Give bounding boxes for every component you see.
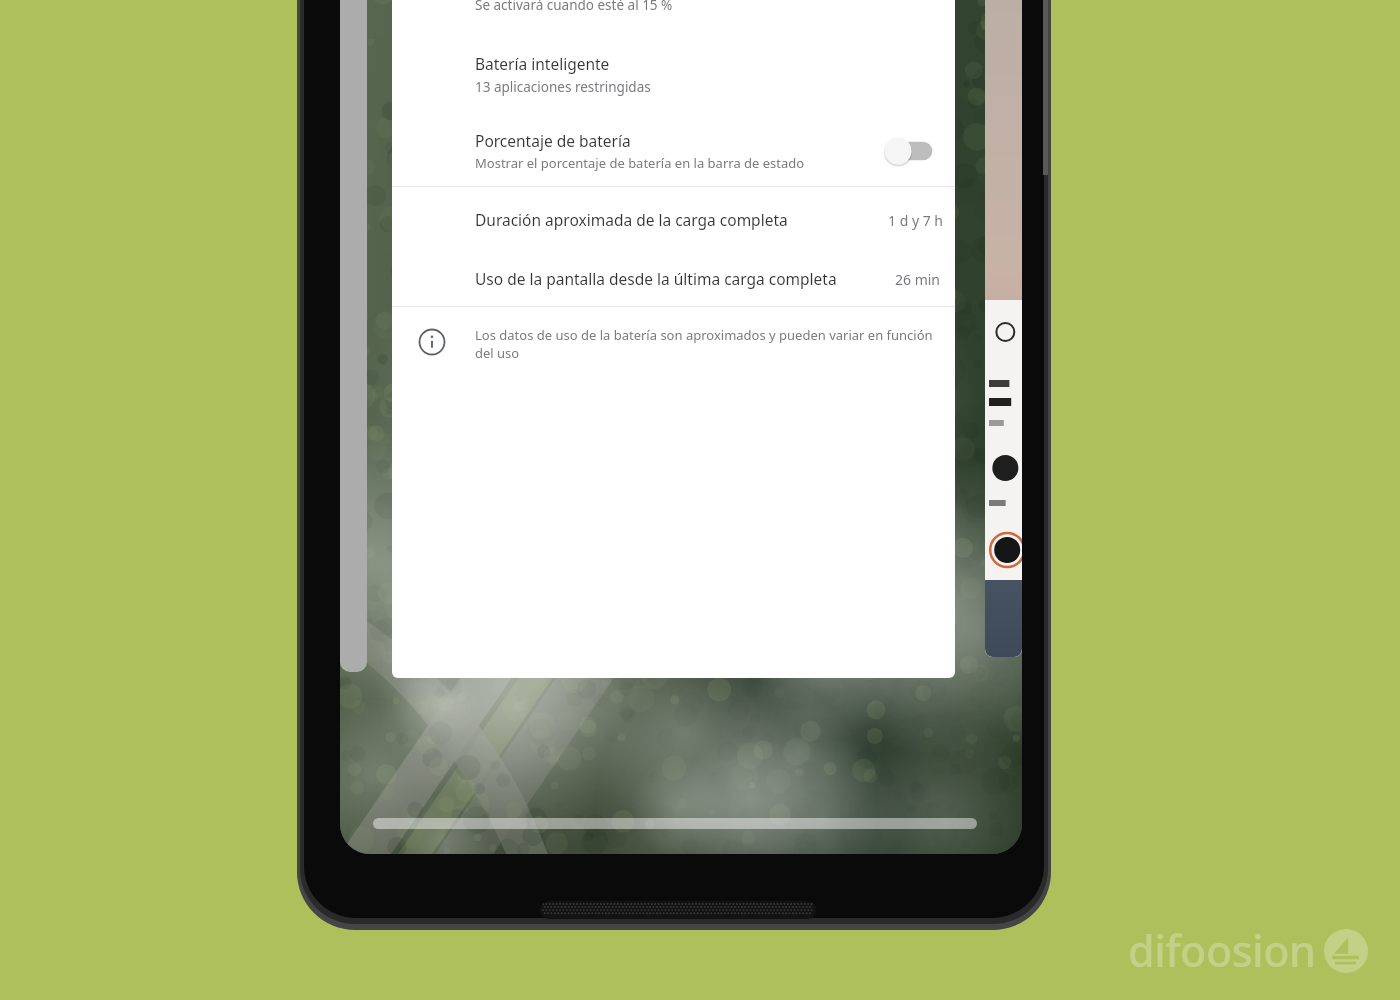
staticText: Uso de la pantalla desde la última carga… [475, 268, 837, 289]
staticText: 1 d y 7 h [888, 211, 943, 230]
button[interactable] [985, 0, 1022, 657]
staticText: Se activará cuando esté al 15 % [475, 0, 673, 14]
button[interactable]: Duración aproximada de la carga completa [392, 187, 955, 247]
button[interactable]: Porcentaje de batería [392, 118, 955, 186]
staticText: Los datos de uso de la batería son aprox… [475, 326, 933, 344]
staticText: Mostrar el porcentaje de batería en la b… [475, 154, 805, 172]
button[interactable]: Batería inteligente [392, 40, 955, 104]
staticText: Duración aproximada de la carga completa [475, 209, 788, 230]
button[interactable]: Uso de la pantalla desde la última carga… [392, 247, 955, 306]
staticText: 26 min [895, 270, 941, 289]
button[interactable]: Porcentaje de batería [884, 136, 936, 166]
staticText: Porcentaje de batería [475, 130, 631, 151]
button[interactable]: Información [417, 327, 447, 357]
staticText: 13 aplicaciones restringidas [475, 78, 651, 96]
staticText: difoosion [1128, 921, 1316, 980]
staticText: del uso [475, 344, 520, 362]
staticText: Batería inteligente [475, 53, 610, 74]
